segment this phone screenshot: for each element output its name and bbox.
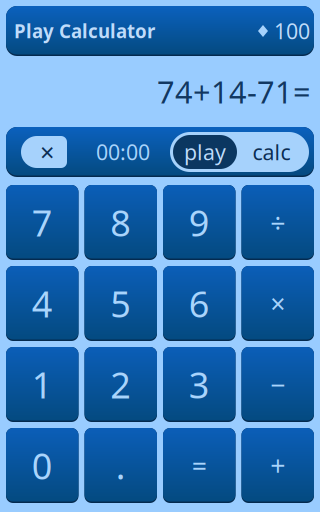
staticText: 74+14-71= xyxy=(157,71,311,112)
staticText: calc xyxy=(252,138,290,166)
button[interactable]: × xyxy=(241,266,314,341)
button[interactable]: 3 xyxy=(163,347,235,422)
staticText: × xyxy=(40,135,54,169)
button[interactable]: − xyxy=(241,347,314,422)
staticText: Play Calculator xyxy=(14,19,155,43)
staticText: 8 xyxy=(110,199,131,246)
button[interactable]: 7 xyxy=(6,185,78,260)
button[interactable]: 1 xyxy=(6,347,78,422)
staticText: 2 xyxy=(110,361,131,408)
staticText: 7 xyxy=(32,199,53,246)
staticText: 3 xyxy=(189,361,210,408)
button[interactable]: 8 xyxy=(84,185,157,260)
button[interactable]: 5 xyxy=(84,266,157,341)
button[interactable]: = xyxy=(163,428,235,503)
button[interactable]: + xyxy=(241,428,314,503)
button[interactable]: play xyxy=(173,135,237,169)
button[interactable]: 9 xyxy=(163,185,235,260)
button[interactable]: 2 xyxy=(84,347,157,422)
button[interactable]: calc xyxy=(237,135,306,169)
button[interactable]: 4 xyxy=(6,266,78,341)
button[interactable]: 0 xyxy=(6,428,78,503)
staticText: 9 xyxy=(189,199,210,246)
button[interactable]: 6 xyxy=(163,266,235,341)
staticText: + xyxy=(270,448,285,483)
button[interactable]: ÷ xyxy=(241,185,314,260)
button[interactable]: . xyxy=(84,428,157,503)
staticText: − xyxy=(270,367,285,402)
staticText: 1 xyxy=(32,361,53,408)
staticText: play xyxy=(184,138,226,166)
staticText: 0 xyxy=(32,442,53,489)
staticText: ÷ xyxy=(270,205,285,240)
staticText: 00:00 xyxy=(96,138,150,166)
staticText: = xyxy=(192,448,207,483)
staticText: 6 xyxy=(189,280,210,327)
staticText: . xyxy=(116,442,126,489)
button[interactable]: Clear xyxy=(21,136,67,168)
staticText: 100 xyxy=(268,17,310,45)
staticText: × xyxy=(270,286,285,321)
staticText: 5 xyxy=(110,280,131,327)
staticText: 4 xyxy=(32,280,53,327)
